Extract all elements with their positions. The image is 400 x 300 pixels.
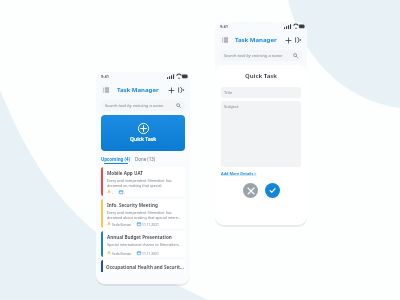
button[interactable]: Confirm xyxy=(265,183,280,198)
staticText: Search task by entering a name xyxy=(105,103,164,109)
button[interactable]: Search task by entering a name xyxy=(101,100,185,111)
staticText: Occupational Health and Security Tra… xyxy=(106,264,185,270)
button[interactable]: Cancel xyxy=(243,183,258,198)
button[interactable]: Menu xyxy=(220,35,229,44)
button[interactable]: Upcoming (4) xyxy=(101,156,130,164)
staticText: Every avid independent filmmaker has dre… xyxy=(107,178,182,188)
button[interactable]: Mobile App UAT xyxy=(101,167,185,196)
staticText: Search task by entering a name xyxy=(224,53,283,59)
staticText: Quick Task xyxy=(130,136,157,143)
button[interactable]: Profile xyxy=(294,36,302,44)
staticText: - xyxy=(112,190,114,194)
button[interactable]: Search task by entering a name xyxy=(220,50,302,61)
button[interactable]: Title xyxy=(221,87,301,98)
staticText: Info. Security Meeting xyxy=(107,202,158,208)
staticText: Seda Koman xyxy=(112,251,132,255)
staticText: Done (13) xyxy=(135,156,156,162)
button[interactable]: Subject xyxy=(221,101,301,167)
button[interactable]: Quick Task xyxy=(101,115,185,151)
staticText: - xyxy=(124,190,126,194)
staticText: 9:41 xyxy=(220,24,228,29)
staticText: Subject xyxy=(224,104,239,110)
staticText: Annual Budget Presentation xyxy=(107,234,172,240)
button[interactable]: Menu xyxy=(101,85,110,94)
staticText: Task Manager xyxy=(117,86,159,94)
staticText: Mobile App UAT xyxy=(107,170,143,176)
staticText: Seda Koman xyxy=(112,222,132,226)
button[interactable]: Profile xyxy=(177,86,185,94)
button[interactable]: Occupational Health and Security Tra… xyxy=(101,260,185,272)
button[interactable]: Info. Security Meeting xyxy=(101,199,185,228)
staticText: Quick Task xyxy=(221,72,301,80)
staticText: Upcoming (4) xyxy=(101,156,130,162)
staticText: Title xyxy=(224,90,233,96)
button[interactable]: Annual Budget Presentation xyxy=(101,231,185,257)
staticText: 11.11.2021 xyxy=(142,251,159,255)
staticText: 11.11.2021 xyxy=(142,222,159,226)
button[interactable]: Add More Details > xyxy=(221,171,257,176)
staticText: Add More Details > xyxy=(221,171,257,176)
staticText: Special international chance to filmmake… xyxy=(107,242,180,247)
staticText: Task Manager xyxy=(235,36,277,44)
button[interactable]: Add task xyxy=(284,36,292,44)
staticText: 9:41 xyxy=(101,74,109,79)
staticText: Every avid independent filmmaker has dre… xyxy=(107,210,182,220)
button[interactable]: Add task xyxy=(167,86,175,94)
button[interactable]: Done (13) xyxy=(135,156,156,164)
